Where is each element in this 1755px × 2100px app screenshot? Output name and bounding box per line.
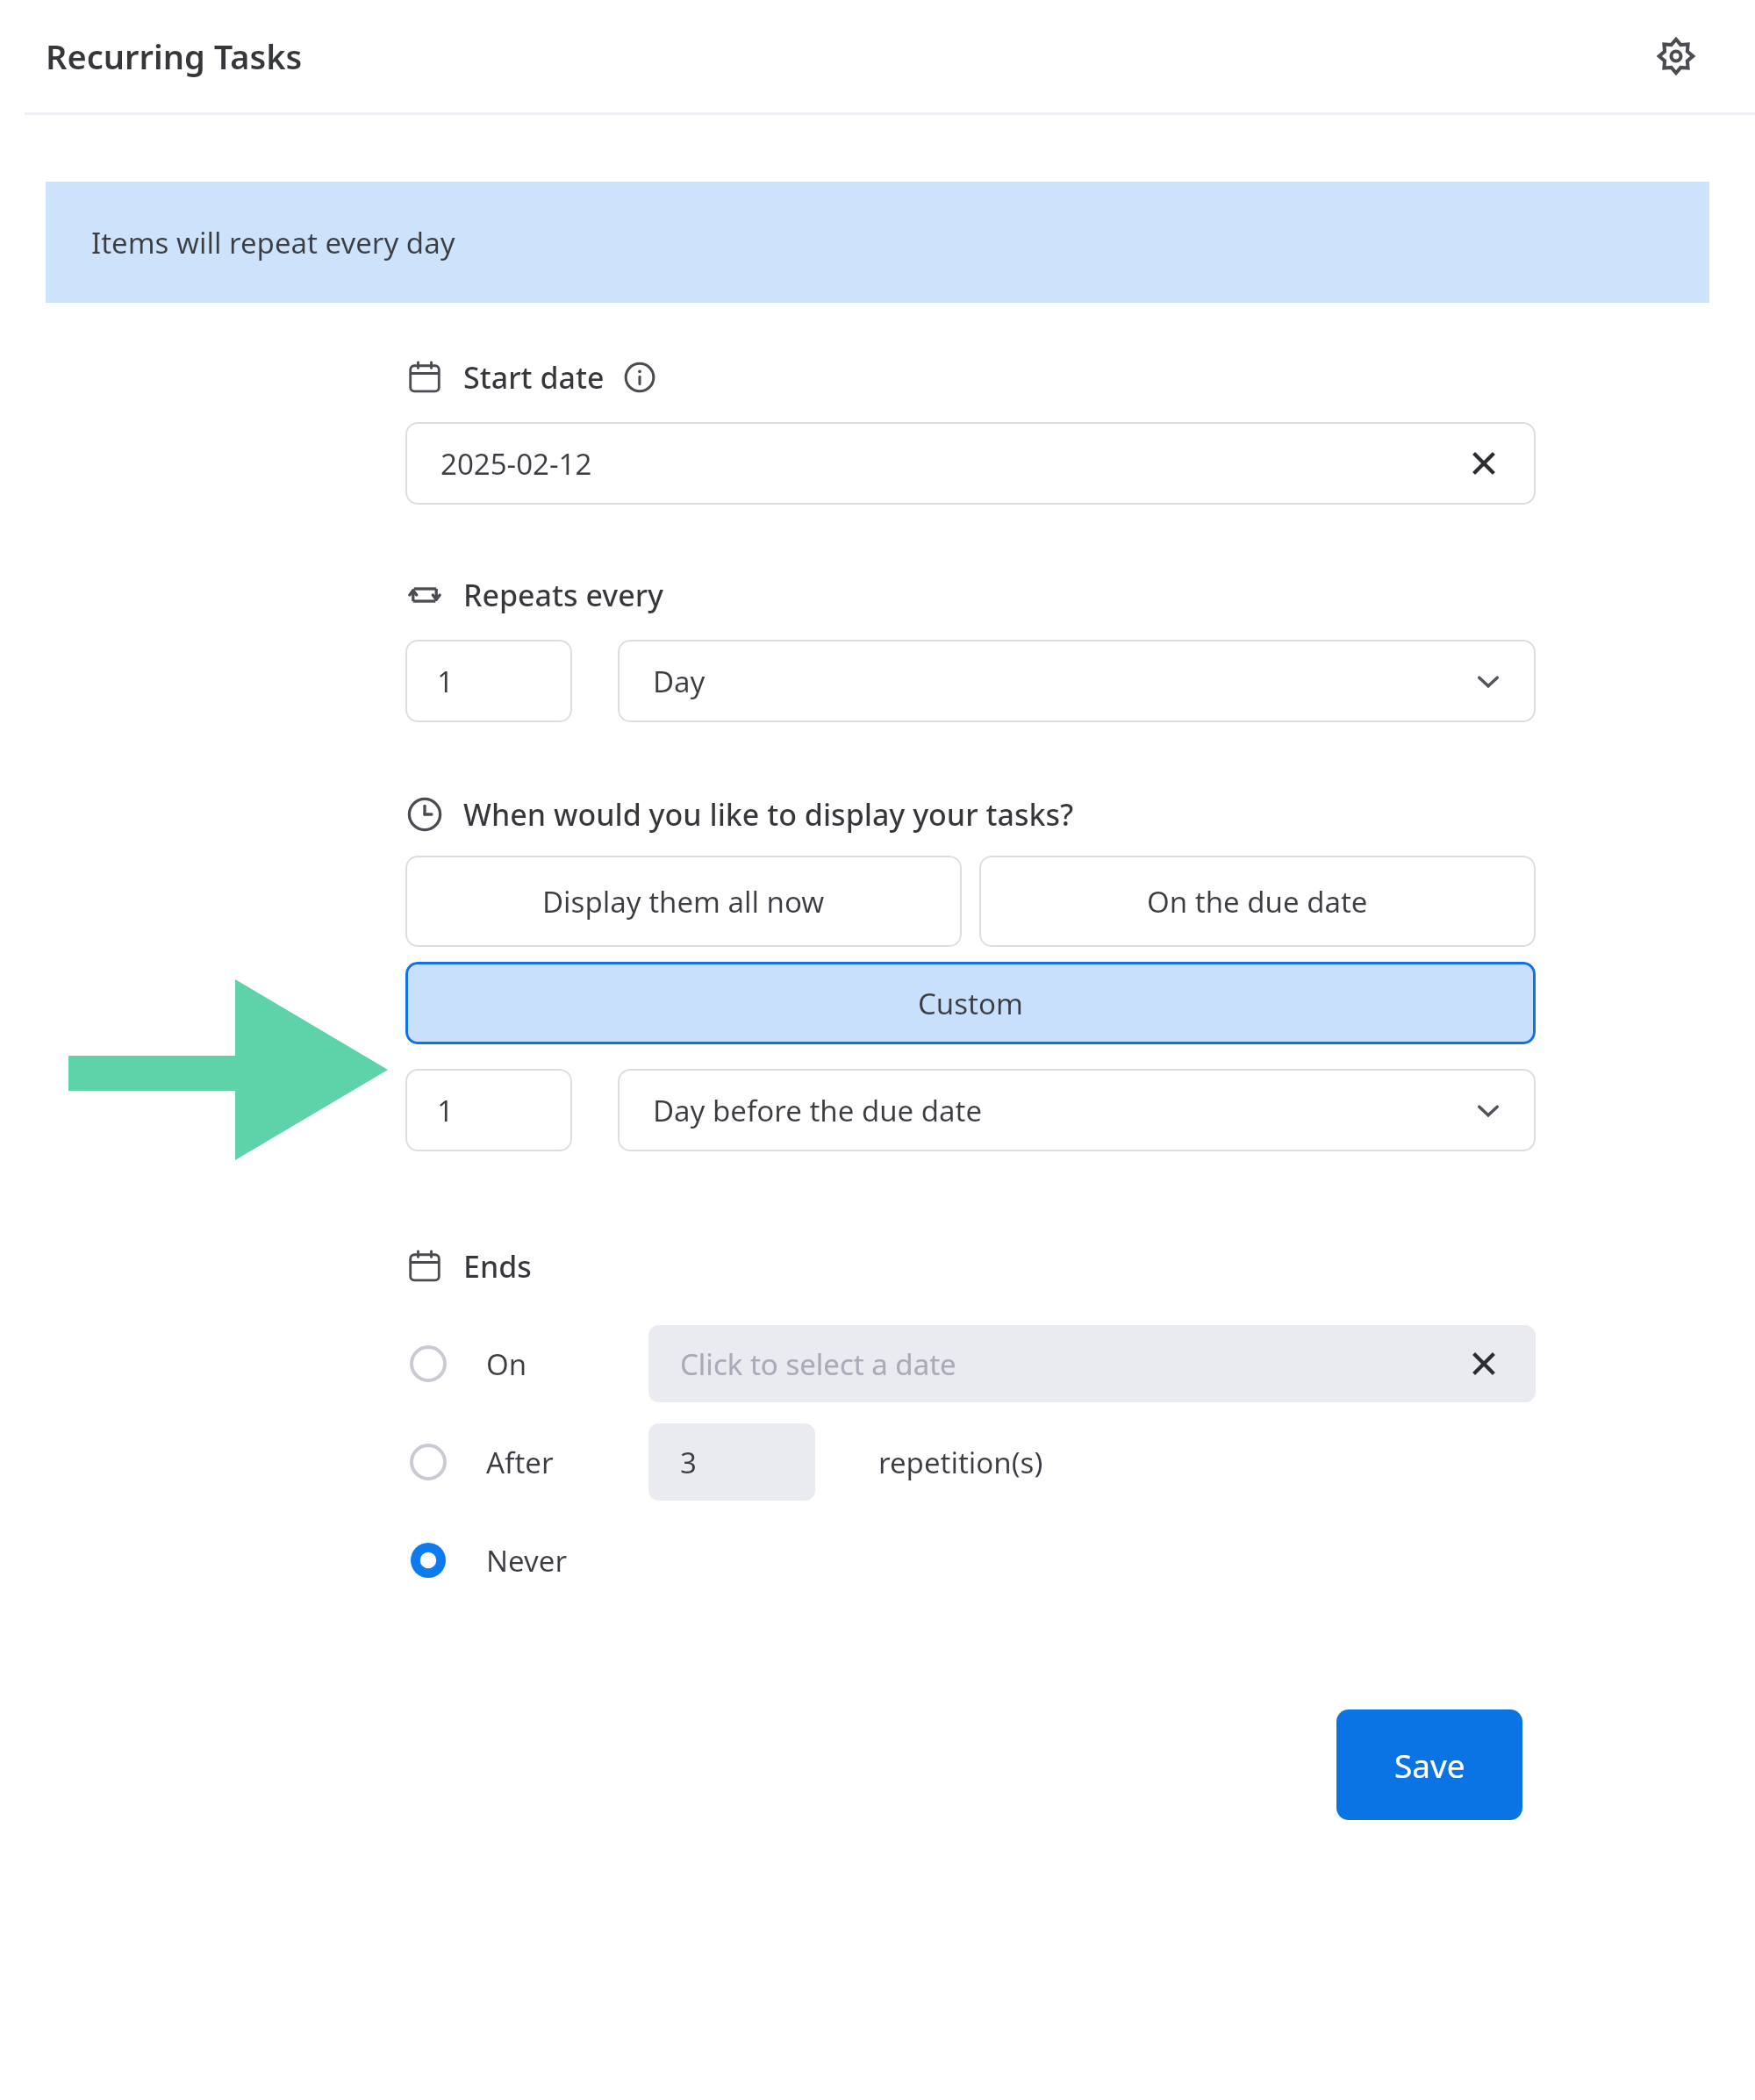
button[interactable]: Not selected bbox=[405, 1320, 1536, 1408]
button[interactable]: Display them all now bbox=[405, 856, 962, 947]
button[interactable]: Day bbox=[618, 640, 1536, 722]
staticText: Save bbox=[1394, 1743, 1465, 1787]
staticText: 1 bbox=[437, 1091, 454, 1130]
button[interactable]: Selected bbox=[405, 1537, 451, 1583]
staticText: On the due date bbox=[1147, 882, 1368, 921]
button[interactable]: Not selected bbox=[405, 1418, 1536, 1506]
button[interactable]: Save bbox=[1336, 1709, 1522, 1820]
staticText: After bbox=[486, 1443, 554, 1482]
button[interactable]: On the due date bbox=[979, 856, 1536, 947]
staticText: repetition(s) bbox=[878, 1443, 1043, 1482]
staticText: 1 bbox=[437, 662, 454, 701]
button[interactable]: Day before the due date bbox=[618, 1069, 1536, 1151]
button[interactable]: 1 bbox=[405, 1069, 572, 1151]
staticText: 3 bbox=[680, 1443, 697, 1482]
staticText: Ends bbox=[463, 1246, 532, 1287]
button[interactable]: 1 bbox=[405, 640, 572, 722]
button[interactable]: Selected bbox=[405, 1516, 1536, 1604]
staticText: Items will repeat every day bbox=[91, 223, 455, 262]
staticText: 2025-02-12 bbox=[441, 444, 592, 484]
button[interactable]: Clear start date bbox=[1460, 440, 1508, 487]
button[interactable]: Settings bbox=[1648, 28, 1704, 84]
staticText: Day bbox=[653, 662, 706, 701]
staticText: Recurring Tasks bbox=[46, 33, 303, 79]
staticText: When would you like to display your task… bbox=[463, 794, 1074, 835]
staticText: Custom bbox=[918, 984, 1023, 1023]
staticText: Never bbox=[486, 1541, 568, 1580]
button[interactable]: Not selected bbox=[405, 1439, 451, 1485]
staticText: On bbox=[486, 1344, 527, 1384]
button[interactable]: 2025-02-12 bbox=[405, 422, 1536, 505]
staticText: Display them all now bbox=[542, 882, 825, 921]
button[interactable]: Not selected bbox=[405, 1341, 451, 1387]
staticText: Click to select a date bbox=[680, 1344, 956, 1384]
staticText: Start date bbox=[463, 357, 605, 398]
staticText: Day before the due date bbox=[653, 1091, 983, 1130]
button[interactable]: Custom bbox=[405, 962, 1536, 1044]
staticText: Repeats every bbox=[463, 575, 664, 615]
